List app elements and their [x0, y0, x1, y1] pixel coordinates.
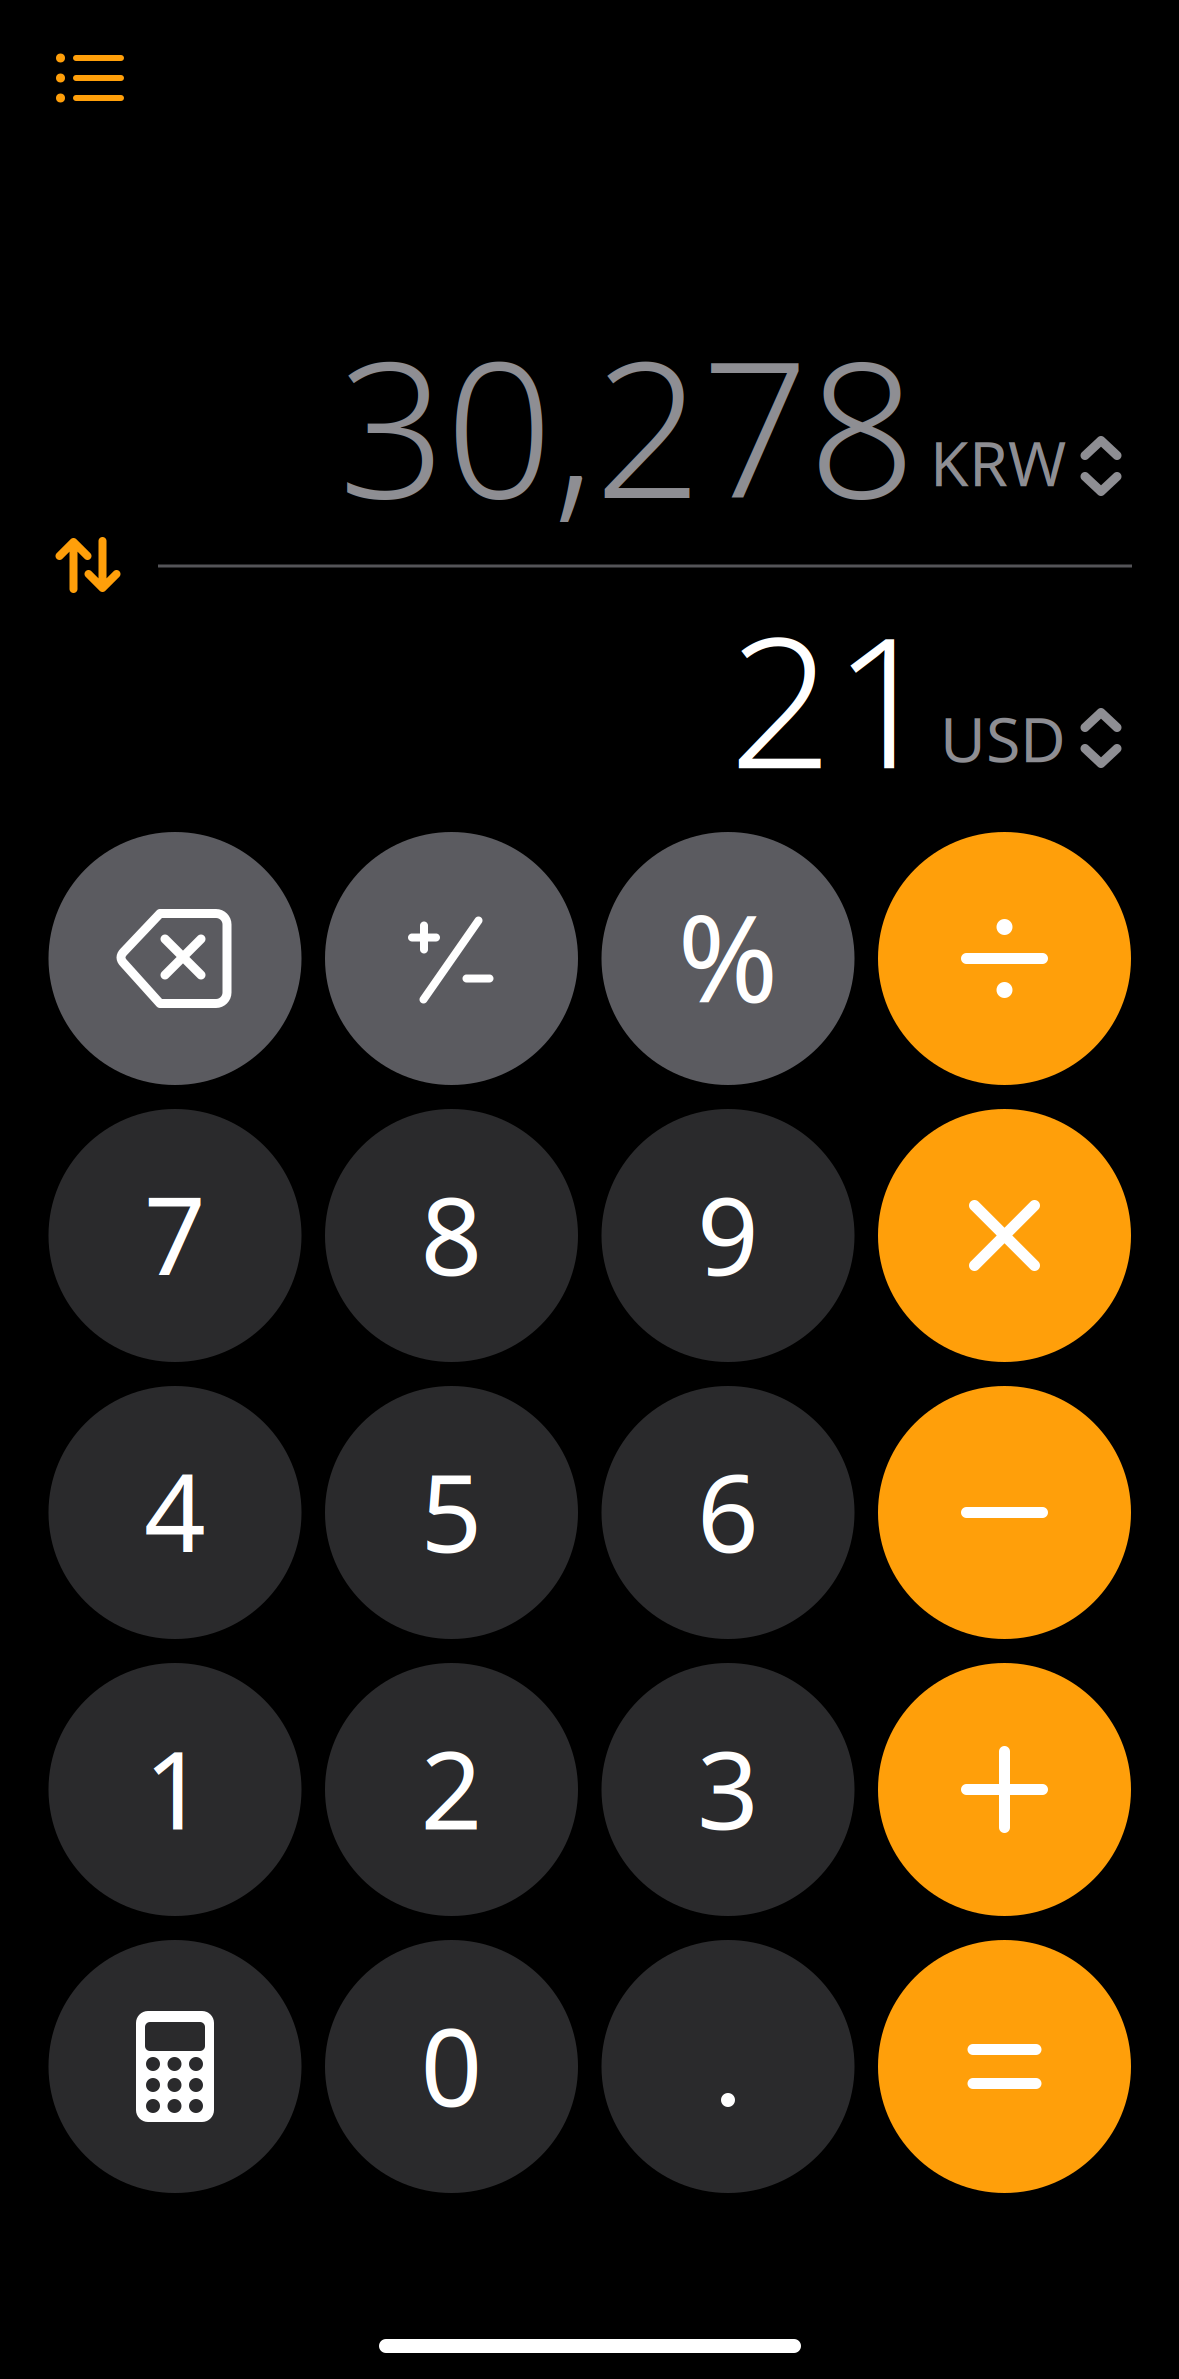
- button[interactable]: 0: [325, 1940, 578, 2193]
- button[interactable]: Add: [878, 1663, 1131, 1916]
- button[interactable]: KRW: [930, 405, 1122, 517]
- staticText: 0: [420, 1993, 482, 2136]
- staticText: 7: [144, 1162, 206, 1305]
- button[interactable]: Percent: [601, 832, 854, 1085]
- staticText: 4: [144, 1439, 206, 1582]
- staticText: 3: [697, 1716, 759, 1859]
- button[interactable]: 1: [48, 1663, 301, 1916]
- button[interactable]: 7: [48, 1109, 301, 1362]
- button[interactable]: 8: [325, 1109, 578, 1362]
- staticText: 8: [420, 1162, 482, 1305]
- button[interactable]: Equals: [878, 1940, 1131, 2193]
- button[interactable]: USD: [940, 682, 1122, 794]
- button[interactable]: Toggle sign: [325, 832, 578, 1085]
- button[interactable]: Multiply: [878, 1109, 1131, 1362]
- staticText: 21: [729, 578, 937, 818]
- button[interactable]: Decimal point: [601, 1940, 854, 2193]
- button[interactable]: Currency list: [32, 29, 148, 126]
- button[interactable]: 5: [325, 1386, 578, 1639]
- button[interactable]: Delete: [48, 832, 301, 1085]
- button[interactable]: 6: [601, 1386, 854, 1639]
- staticText: USD: [940, 696, 1066, 780]
- staticText: 30,278: [338, 300, 915, 550]
- button[interactable]: 4: [48, 1386, 301, 1639]
- staticText: 5: [420, 1439, 482, 1582]
- staticText: 1: [144, 1716, 206, 1859]
- button[interactable]: Subtract: [878, 1386, 1131, 1639]
- button[interactable]: 3: [601, 1663, 854, 1916]
- button[interactable]: Divide: [878, 832, 1131, 1085]
- staticText: 6: [697, 1439, 759, 1582]
- staticText: %: [677, 875, 778, 1036]
- staticText: 9: [697, 1162, 759, 1305]
- button[interactable]: 9: [601, 1109, 854, 1362]
- button[interactable]: Swap currencies: [39, 521, 136, 609]
- button[interactable]: Calculator: [48, 1940, 301, 2193]
- staticText: 2: [420, 1716, 482, 1859]
- staticText: KRW: [930, 420, 1066, 504]
- button[interactable]: 2: [325, 1663, 578, 1916]
